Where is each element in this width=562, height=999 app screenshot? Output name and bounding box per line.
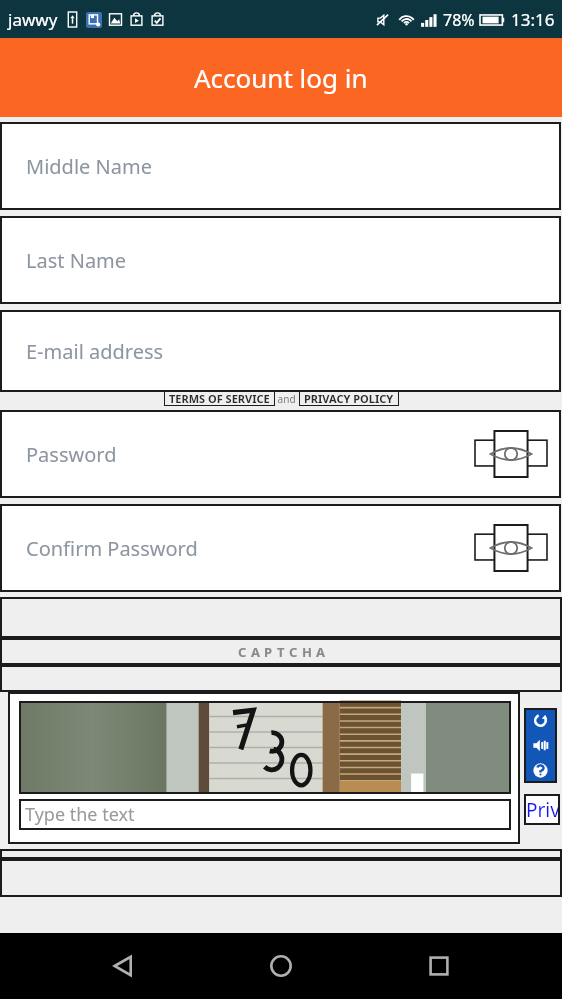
button[interactable]: TERMS OF SERVICE [164,391,275,406]
button[interactable]: Recent apps [404,933,474,999]
staticText: E-mail address [26,338,164,365]
button[interactable]: Show password [475,525,547,571]
button[interactable]: Audio challenge [524,733,557,758]
button[interactable] [19,701,511,794]
staticText: T [277,643,285,661]
staticText: C [289,643,298,661]
staticText: Middle Name [26,153,152,180]
button[interactable]: Refresh challenge [524,708,557,733]
button[interactable]: PRIVACY POLICY [299,391,399,406]
staticText: C [238,643,247,661]
staticText: Confirm Password [26,535,198,562]
staticText: Last Name [26,247,127,274]
staticText: TERMS OF SERVICE [169,391,270,406]
button[interactable]: E-mail address [0,310,561,392]
staticText: 13:16 [511,8,555,31]
button[interactable]: Password [0,410,561,498]
button[interactable]: Help [524,758,557,783]
staticText: Password [26,441,117,468]
button[interactable]: Confirm Password [0,504,561,592]
staticText: H [302,643,312,661]
button[interactable]: Middle Name [0,122,561,210]
button[interactable]: Priv [524,794,560,825]
staticText: Priv [526,797,560,823]
staticText: Type the text [25,802,135,827]
staticText: 78% [443,9,475,31]
staticText: jawwy [8,8,58,31]
staticText: PRIVACY POLICY [304,391,394,406]
staticText: A [251,643,260,661]
button[interactable]: Last Name [0,216,561,304]
staticText: A [316,643,325,661]
button[interactable]: Type the text [19,799,511,830]
staticText: Account log in [194,60,368,95]
button[interactable]: Home [246,933,316,999]
staticText: P [264,643,273,661]
button[interactable]: Show password [475,431,547,477]
button[interactable]: Back [88,933,158,999]
staticText: and [275,392,299,406]
